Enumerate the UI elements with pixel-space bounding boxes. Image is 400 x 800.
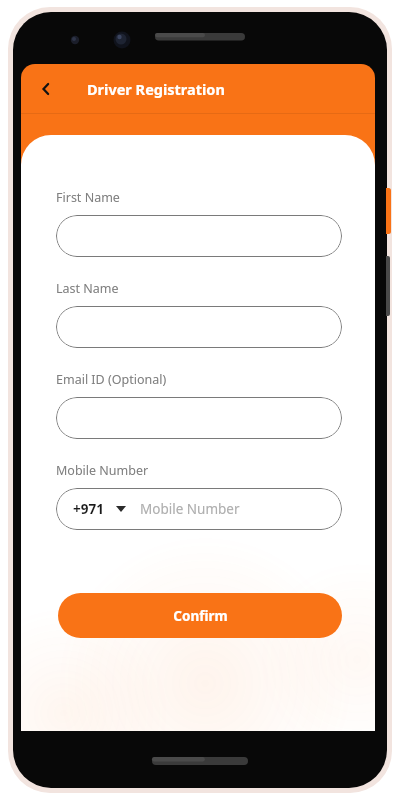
- button[interactable]: [56, 215, 342, 257]
- button[interactable]: Back: [30, 73, 62, 105]
- button[interactable]: +971: [56, 488, 342, 530]
- staticText: +971: [73, 500, 104, 518]
- staticText: Driver Registration: [87, 79, 225, 99]
- staticText: Email ID (Optional): [56, 371, 167, 388]
- staticText: First Name: [56, 189, 120, 206]
- button[interactable]: Select country code: [113, 501, 129, 517]
- staticText: Mobile Number: [56, 462, 149, 479]
- button[interactable]: [56, 397, 342, 439]
- staticText: Confirm: [173, 607, 228, 625]
- staticText: Last Name: [56, 280, 119, 297]
- button[interactable]: [56, 306, 342, 348]
- button[interactable]: Confirm: [58, 593, 342, 638]
- staticText: Mobile Number: [140, 500, 240, 518]
